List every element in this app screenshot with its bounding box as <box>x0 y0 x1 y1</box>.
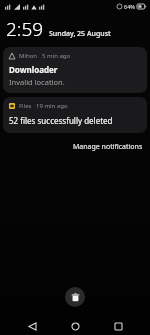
button[interactable]: Back <box>21 317 43 335</box>
staticText: Downloader <box>9 64 58 75</box>
staticText: Sunday, 25 August <box>49 29 111 39</box>
staticText: 64% <box>124 3 135 10</box>
staticText: Files <box>19 102 32 110</box>
staticText: 2:59 <box>6 16 44 42</box>
button[interactable]: Clear all notifications <box>65 287 85 307</box>
button[interactable]: Files <box>3 97 147 133</box>
button[interactable]: Recent apps <box>107 317 129 335</box>
staticText: 19 min ago <box>36 102 68 110</box>
staticText: Manage notifications <box>73 142 143 152</box>
staticText: Mihon <box>19 52 38 60</box>
staticText: 5 min ago <box>42 52 71 60</box>
button[interactable]: Mihon <box>3 47 147 93</box>
button[interactable]: Home <box>64 317 86 335</box>
button[interactable]: Manage notifications <box>66 139 150 155</box>
staticText: 52 files successfully deleted <box>9 115 113 126</box>
staticText: Invalid location. <box>9 77 65 87</box>
